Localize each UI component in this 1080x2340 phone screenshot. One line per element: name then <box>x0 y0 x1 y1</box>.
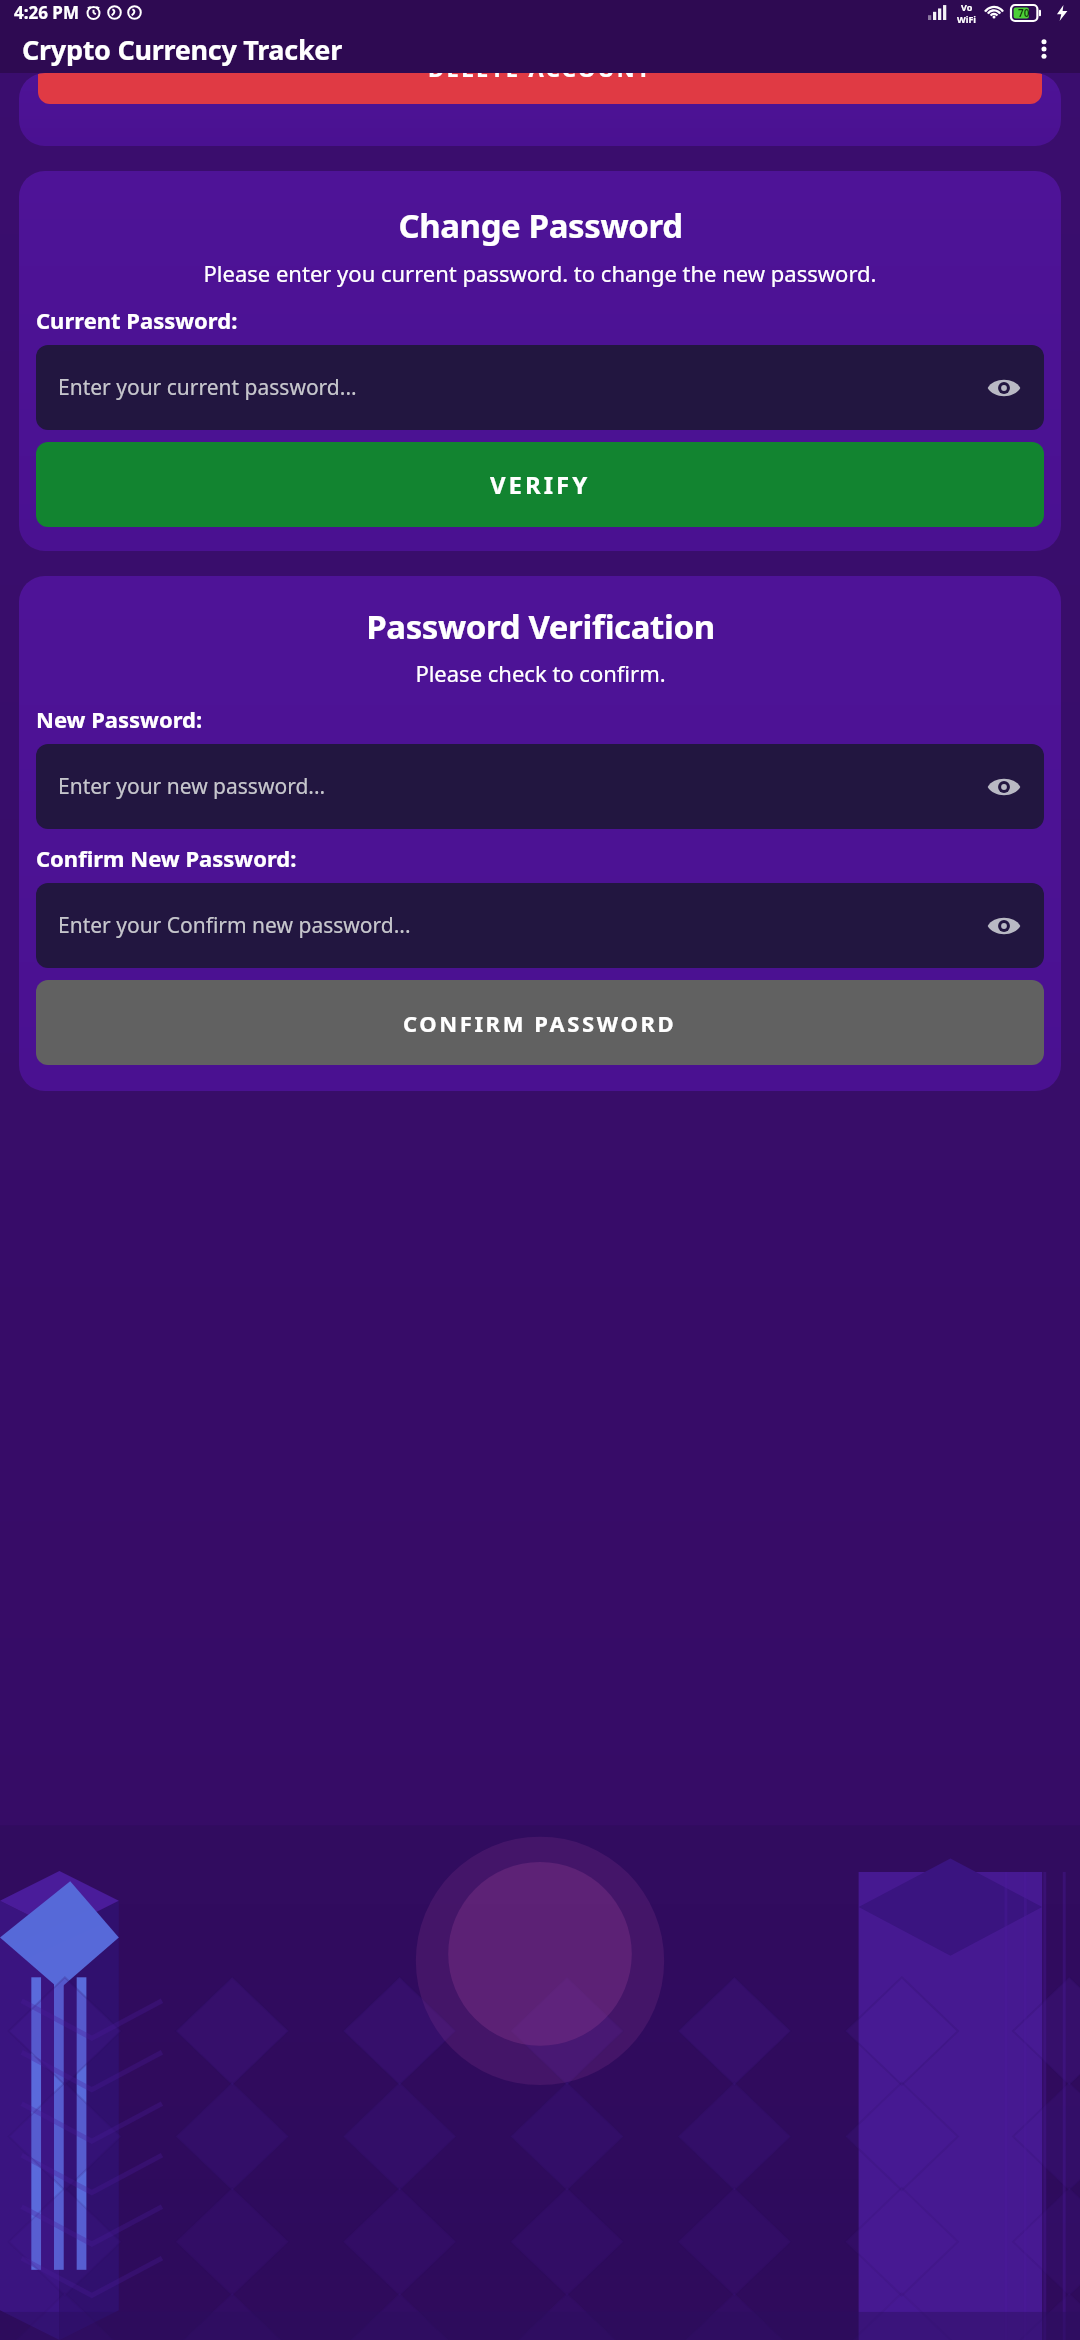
staticText: CONFIRM PASSWORD <box>403 1008 677 1038</box>
staticText: VERIFY <box>490 468 591 501</box>
staticText: 4:26 PM <box>14 1 79 24</box>
button[interactable]: Enter your Confirm new password... <box>36 883 1044 968</box>
staticText: Password Verification <box>366 604 715 649</box>
staticText: WiFi <box>957 13 977 25</box>
button[interactable]: DELETE ACCOUNT <box>38 73 1042 104</box>
staticText: Enter your new password... <box>58 772 326 801</box>
button[interactable]: More options <box>1022 27 1066 71</box>
staticText: Change Password <box>398 203 683 248</box>
button[interactable]: Show confirm new password <box>980 902 1028 950</box>
staticText: Enter your Confirm new password... <box>58 911 411 940</box>
staticText: Please check to confirm. <box>415 658 666 688</box>
button[interactable]: Show new password <box>980 763 1028 811</box>
staticText: Vo <box>961 1 973 13</box>
staticText: 70 <box>1018 6 1030 20</box>
button[interactable]: Show current password <box>980 364 1028 412</box>
button[interactable]: VERIFY <box>36 442 1044 527</box>
staticText: Current Password: <box>36 305 238 335</box>
staticText: Enter your current password... <box>58 373 357 402</box>
button[interactable]: Enter your new password... <box>36 744 1044 829</box>
staticText: DELETE ACCOUNT <box>428 73 653 83</box>
button[interactable]: CONFIRM PASSWORD <box>36 980 1044 1065</box>
staticText: Confirm New Password: <box>36 843 297 873</box>
staticText: Crypto Currency Tracker <box>22 31 342 68</box>
button[interactable]: Enter your current password... <box>36 345 1044 430</box>
staticText: New Password: <box>36 704 203 734</box>
staticText: Please enter you current password. to ch… <box>35 258 1045 288</box>
